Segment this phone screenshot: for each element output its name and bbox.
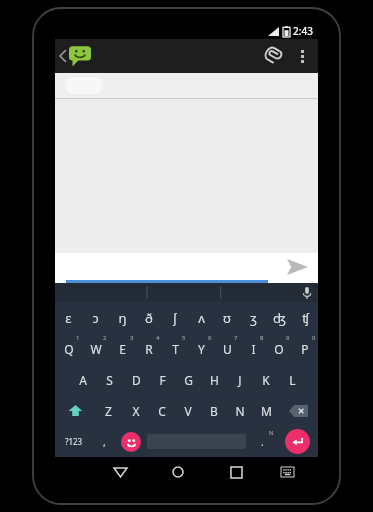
button[interactable]: ɔ	[82, 302, 109, 333]
button[interactable]: More options	[290, 39, 314, 73]
button[interactable]: J	[227, 364, 253, 395]
staticText: 0	[312, 334, 316, 342]
button[interactable]: L	[279, 364, 305, 395]
button[interactable]: Send	[276, 253, 318, 280]
staticText: K	[262, 372, 270, 388]
button[interactable]: N	[227, 395, 253, 426]
staticText: ʒ	[250, 309, 257, 327]
staticText: I	[251, 341, 256, 357]
staticText: W	[90, 341, 102, 357]
button[interactable]: ʧ	[292, 302, 318, 333]
button[interactable]: Navigate up, Messaging	[55, 39, 96, 73]
staticText: ɔ	[92, 309, 99, 327]
staticText: 1	[76, 334, 80, 342]
staticText: V	[184, 403, 192, 419]
staticText: ?123	[65, 436, 83, 447]
staticText: ʤ	[273, 309, 286, 327]
button[interactable]: Home	[149, 457, 207, 487]
button[interactable]: U	[214, 333, 240, 364]
button[interactable]: Voice input	[296, 283, 318, 302]
button[interactable]: Hide keyboard	[91, 457, 149, 487]
button[interactable]: Z	[95, 395, 122, 426]
staticText: G	[184, 372, 193, 388]
button[interactable]: I	[240, 333, 266, 364]
staticText: Q	[64, 341, 74, 357]
button[interactable]: Emoji	[116, 426, 145, 457]
button[interactable]: D	[123, 364, 149, 395]
button[interactable]: ?123	[55, 426, 92, 457]
button[interactable]: R	[136, 333, 162, 364]
button[interactable]: S	[96, 364, 123, 395]
button[interactable]: Switch keyboard	[265, 457, 309, 487]
staticText: 7	[234, 334, 238, 342]
button[interactable]: Q	[55, 333, 82, 364]
button[interactable]: ,	[92, 426, 116, 457]
button[interactable]: Space	[145, 426, 248, 457]
button[interactable]: ʒ	[240, 302, 266, 333]
staticText: ð	[145, 309, 153, 327]
staticText: ʊ	[223, 309, 231, 327]
button[interactable]: B	[201, 395, 227, 426]
staticText: B	[210, 403, 218, 419]
staticText: E	[119, 341, 126, 357]
staticText: P	[301, 341, 309, 357]
staticText: L	[289, 372, 296, 388]
staticText: X	[132, 403, 140, 419]
staticText: ,	[103, 435, 106, 449]
button[interactable]: G	[175, 364, 201, 395]
staticText: R	[145, 341, 153, 357]
staticText: 6	[208, 334, 212, 342]
staticText: ʃ	[173, 309, 177, 327]
staticText: H	[210, 372, 219, 388]
button[interactable]: Enter	[277, 426, 318, 457]
button[interactable]: Y	[188, 333, 214, 364]
staticText: 4	[156, 334, 160, 342]
staticText: .	[261, 435, 264, 449]
button[interactable]: Backspace	[279, 395, 318, 426]
button[interactable]: M	[253, 395, 279, 426]
button[interactable]: ʃ	[162, 302, 188, 333]
staticText: M	[261, 403, 272, 419]
staticText: ʧ	[302, 309, 309, 327]
button[interactable]: ʤ	[266, 302, 292, 333]
button[interactable]: ɛ	[55, 302, 82, 333]
staticText: 2	[103, 334, 107, 342]
staticText: ʌ	[198, 309, 205, 327]
button[interactable]: C	[149, 395, 175, 426]
staticText: ɛ	[65, 309, 72, 327]
button[interactable]: A	[69, 364, 96, 395]
button[interactable]: V	[175, 395, 201, 426]
staticText: U	[223, 341, 232, 357]
staticText: C	[158, 403, 166, 419]
button[interactable]: ð	[136, 302, 162, 333]
button[interactable]: T	[162, 333, 188, 364]
button[interactable]: F	[149, 364, 175, 395]
button[interactable]: ʊ	[214, 302, 240, 333]
button[interactable]: K	[253, 364, 279, 395]
button[interactable]: P	[292, 333, 318, 364]
button[interactable]: Shift	[55, 395, 95, 426]
button[interactable]: .	[248, 426, 277, 457]
staticText: S	[106, 372, 113, 388]
staticText: ŋ	[118, 309, 127, 327]
button[interactable]: W	[82, 333, 109, 364]
button[interactable]: Recent apps	[207, 457, 265, 487]
button[interactable]: E	[109, 333, 136, 364]
button[interactable]: Attach	[254, 39, 290, 73]
staticText: J	[238, 372, 242, 388]
staticText: D	[132, 372, 141, 388]
button[interactable]: X	[122, 395, 149, 426]
button[interactable]: O	[266, 333, 292, 364]
staticText: F	[159, 372, 166, 388]
staticText: O	[274, 341, 284, 357]
staticText: T	[172, 341, 179, 357]
staticText: 5	[182, 334, 186, 342]
button[interactable]: ŋ	[109, 302, 136, 333]
staticText: A	[79, 372, 87, 388]
button[interactable]: ʌ	[188, 302, 214, 333]
staticText: N	[269, 429, 274, 437]
button[interactable]: H	[201, 364, 227, 395]
staticText: 3	[130, 334, 134, 342]
